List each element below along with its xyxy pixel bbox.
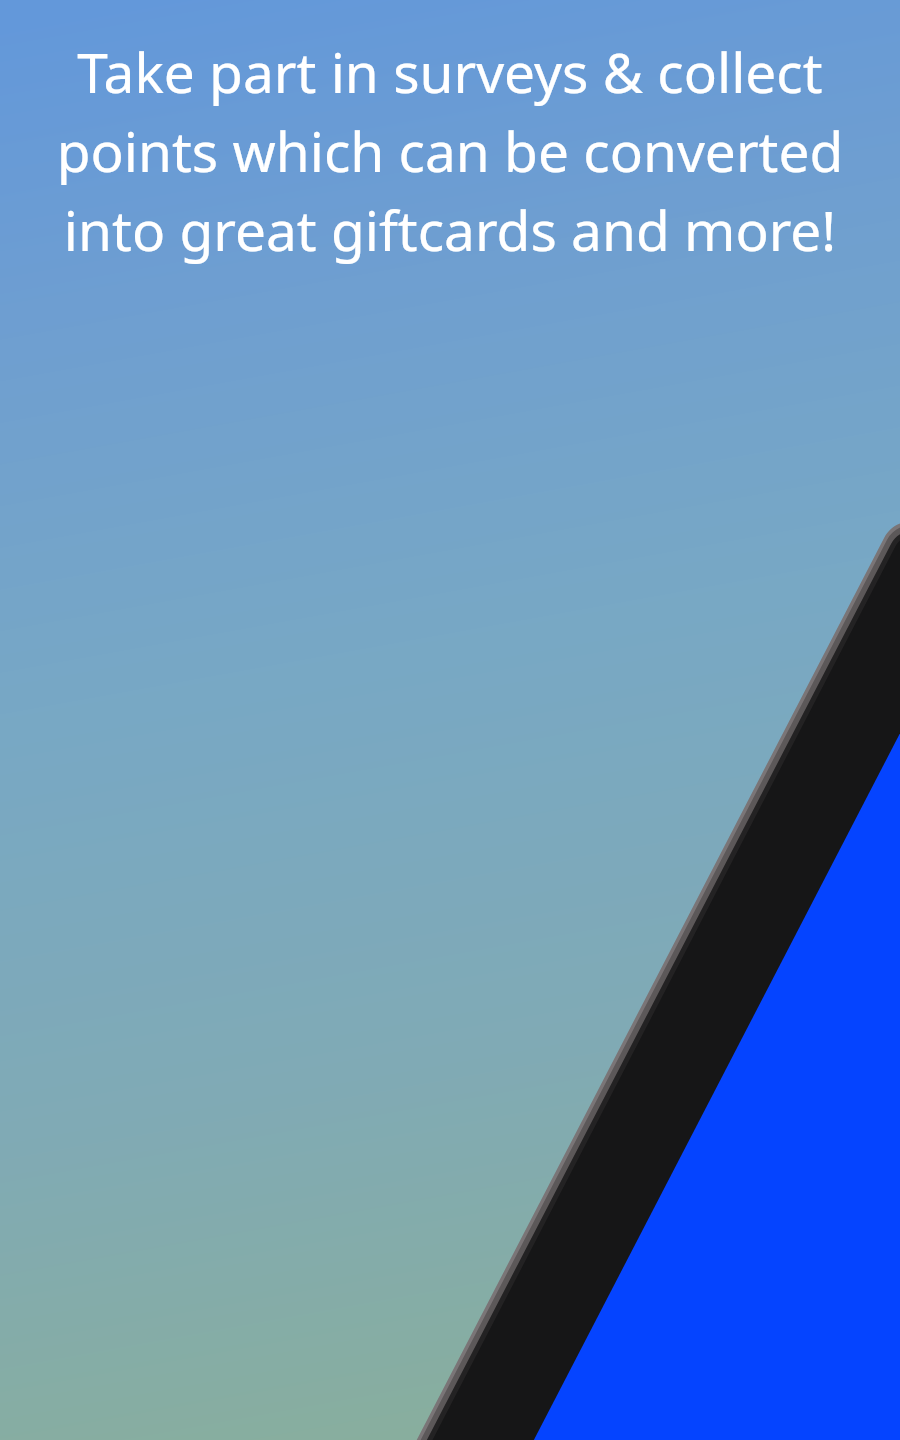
button[interactable]: Tablet displaying the app bbox=[0, 0, 900, 1440]
staticText: Take part in surveys & collect points wh… bbox=[24, 34, 876, 267]
button[interactable]: Take part in surveys & collect points wh… bbox=[24, 34, 876, 267]
